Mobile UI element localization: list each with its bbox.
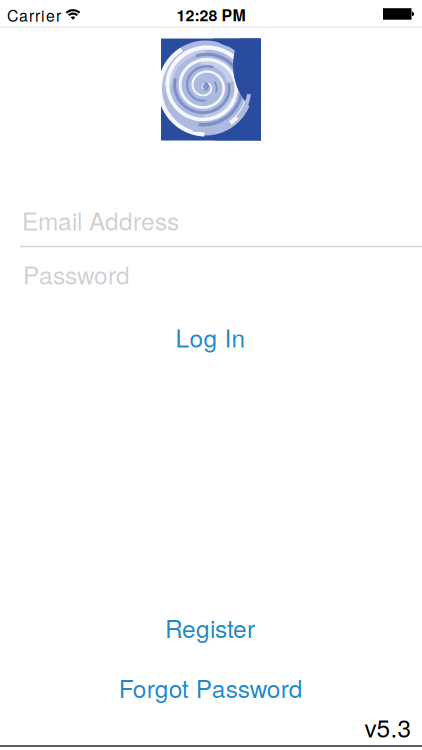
staticText: Password xyxy=(23,256,130,291)
staticText: v5.3 xyxy=(364,709,411,744)
button[interactable]: Register xyxy=(165,610,255,645)
staticText: Forgot Password xyxy=(119,670,303,705)
staticText: Email Address xyxy=(22,202,179,237)
staticText: Log In xyxy=(175,319,245,354)
button[interactable]: Forgot Password xyxy=(119,670,303,705)
staticText: 12:28 PM xyxy=(176,3,245,26)
button[interactable]: Password xyxy=(23,251,421,297)
button[interactable]: Log In xyxy=(175,319,245,354)
staticText: Carrier xyxy=(7,4,61,26)
button[interactable]: Email Address xyxy=(22,197,420,243)
staticText: Register xyxy=(165,610,255,645)
